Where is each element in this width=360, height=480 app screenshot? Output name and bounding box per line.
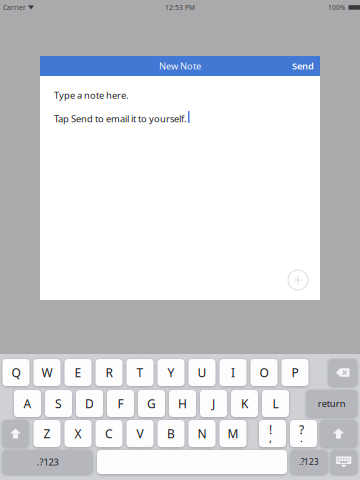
staticText: X <box>74 425 81 441</box>
button[interactable]: .?123 <box>290 450 327 474</box>
staticText: .?123 <box>299 457 319 467</box>
staticText: O <box>259 364 268 380</box>
staticText: V <box>136 425 143 441</box>
button[interactable]: A <box>14 390 41 417</box>
button[interactable]: Shift <box>320 420 357 447</box>
staticText: P <box>291 364 298 380</box>
staticText: Type a note here. <box>54 89 129 101</box>
staticText: ! <box>269 421 272 437</box>
staticText: B <box>167 425 175 441</box>
staticText: D <box>85 395 94 411</box>
staticText: .?123 <box>36 456 58 468</box>
staticText: , <box>269 431 272 445</box>
staticText: A <box>23 395 31 411</box>
staticText: E <box>74 364 81 380</box>
button[interactable]: C <box>95 420 122 447</box>
staticText: J <box>212 395 215 411</box>
staticText: L <box>272 395 278 411</box>
staticText: N <box>197 425 206 441</box>
staticText: I <box>231 364 235 380</box>
button[interactable]: L <box>262 390 289 417</box>
button[interactable]: Q <box>2 359 29 386</box>
button[interactable]: .?123 <box>2 450 92 474</box>
button[interactable]: E <box>64 359 91 386</box>
button[interactable]: ? <box>290 420 317 447</box>
staticText: H <box>178 395 187 411</box>
staticText: 12:53 PM <box>165 3 195 12</box>
button[interactable]: R <box>95 359 122 386</box>
button[interactable]: return <box>306 390 357 417</box>
button[interactable]: Z <box>33 420 60 447</box>
staticText: New Note <box>159 60 201 72</box>
staticText: W <box>41 364 52 380</box>
button[interactable]: U <box>188 359 215 386</box>
button[interactable]: Y <box>157 359 184 386</box>
button[interactable]: Delete <box>328 359 357 386</box>
staticText: Z <box>43 425 50 441</box>
staticText: F <box>117 395 123 411</box>
button[interactable]: J <box>200 390 227 417</box>
button[interactable]: V <box>126 420 153 447</box>
button[interactable]: X <box>64 420 91 447</box>
button[interactable]: K <box>231 390 258 417</box>
button[interactable]: M <box>219 420 246 447</box>
button[interactable]: N <box>188 420 215 447</box>
button[interactable]: B <box>157 420 184 447</box>
staticText: Y <box>167 364 174 380</box>
staticText: . <box>300 431 303 445</box>
staticText: return <box>318 397 346 410</box>
staticText: T <box>136 364 143 380</box>
staticText: R <box>105 364 112 380</box>
staticText: ? <box>299 421 304 437</box>
staticText: C <box>105 425 113 441</box>
button[interactable]: H <box>169 390 196 417</box>
button[interactable]: T <box>126 359 153 386</box>
button[interactable]: Shift <box>2 420 28 447</box>
staticText: S <box>55 395 62 411</box>
staticText: G <box>147 395 156 411</box>
button[interactable]: I <box>219 359 246 386</box>
staticText: Send <box>292 60 314 72</box>
button[interactable]: Add attachment <box>288 270 308 290</box>
staticText: M <box>227 425 238 441</box>
staticText: U <box>197 364 206 380</box>
staticText: Q <box>11 364 20 380</box>
staticText: 100% <box>328 3 346 12</box>
staticText: Carrier <box>3 3 26 12</box>
button[interactable]: P <box>281 359 308 386</box>
staticText: K <box>241 395 248 411</box>
button[interactable]: W <box>33 359 60 386</box>
button[interactable]: Send <box>274 56 320 76</box>
button[interactable]: Hide keyboard <box>330 450 357 474</box>
button[interactable]: O <box>250 359 277 386</box>
button[interactable]: ! <box>259 420 286 447</box>
button[interactable]: G <box>138 390 165 417</box>
button[interactable]: F <box>107 390 134 417</box>
button[interactable]: D <box>76 390 103 417</box>
staticText: Tap Send to email it to yourself. <box>54 112 187 125</box>
button[interactable]: S <box>45 390 72 417</box>
